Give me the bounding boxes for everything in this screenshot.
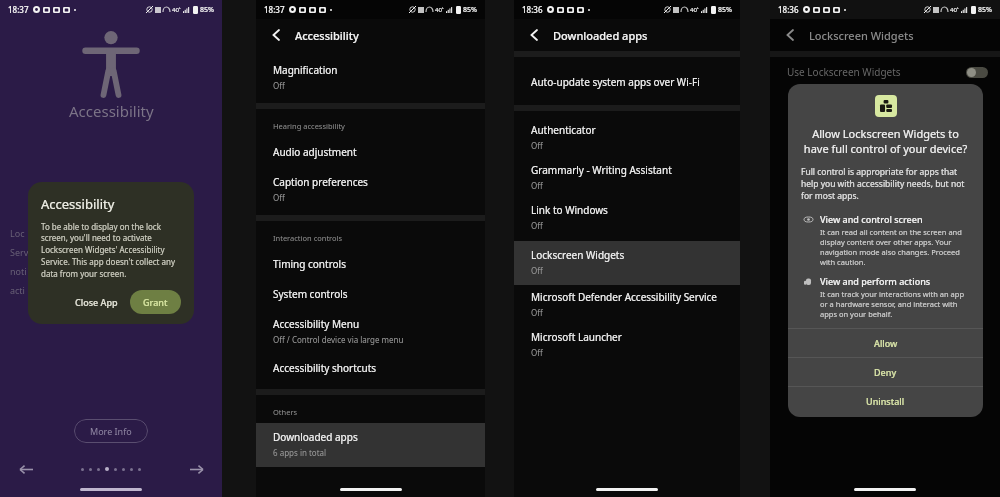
staticText: Off: [531, 140, 543, 151]
staticText: Lockscreen Widgets: [809, 28, 914, 43]
button[interactable]: Downloaded apps: [256, 423, 485, 467]
staticText: Uninstall: [866, 395, 905, 407]
staticText: 18:36: [778, 4, 799, 15]
staticText: Off: [531, 347, 543, 358]
staticText: 18:37: [8, 4, 29, 15]
button[interactable]: More Info: [74, 419, 148, 443]
staticText: Full control is appropriate for apps tha…: [801, 166, 970, 202]
button[interactable]: Microsoft Launcher: [514, 328, 740, 368]
button[interactable]: Allow: [788, 329, 983, 357]
staticText: 85%: [718, 5, 732, 15]
staticText: Accessibility: [295, 28, 359, 43]
staticText: Authenticator: [531, 123, 596, 137]
staticText: 40⁺: [435, 6, 444, 14]
staticText: It can track your interactions with an a…: [820, 289, 970, 319]
button[interactable]: Deny: [788, 358, 983, 386]
staticText: Hearing accessibility: [273, 121, 345, 131]
staticText: Audio adjustment: [273, 145, 357, 159]
staticText: View and perform actions: [820, 275, 931, 287]
staticText: Microsoft Launcher: [531, 330, 622, 344]
staticText: Accessibility: [69, 101, 154, 121]
staticText: Close App: [75, 296, 118, 308]
staticText: View and control screen: [820, 213, 923, 225]
staticText: Magnification: [273, 63, 338, 77]
staticText: Lockscreen Widgets: [531, 248, 625, 262]
button[interactable]: Use Lockscreen Widgets: [770, 57, 1000, 87]
staticText: It can read all content on the screen an…: [820, 227, 970, 267]
staticText: Use Lockscreen Widgets: [787, 65, 901, 79]
button[interactable]: System controls: [256, 285, 485, 315]
button[interactable]: Accessibility Menu: [256, 315, 485, 357]
staticText: Microsoft Defender Accessibility Service: [531, 290, 717, 304]
button[interactable]: Caption preferences: [256, 173, 485, 215]
staticText: Off: [273, 192, 285, 203]
staticText: Off: [531, 307, 543, 318]
staticText: System controls: [273, 287, 348, 301]
button[interactable]: Grammarly - Writing Assistant: [514, 161, 740, 201]
staticText: Accessibility shortcuts: [273, 361, 377, 375]
button[interactable]: Uninstall: [788, 387, 983, 415]
staticText: 18:36: [522, 4, 543, 15]
button[interactable]: Auto-update system apps over Wi-Fi: [514, 71, 740, 105]
staticText: 6 apps in total: [273, 447, 327, 458]
staticText: More Info: [90, 425, 132, 437]
button[interactable]: Timing controls: [256, 249, 485, 285]
staticText: Accessibility: [41, 195, 115, 213]
staticText: Allow Lockscreen Widgets to have full co…: [802, 126, 969, 156]
button[interactable]: Close App: [69, 291, 124, 313]
button[interactable]: Back: [524, 24, 546, 46]
staticText: acti: [10, 284, 25, 296]
staticText: 18:37: [264, 4, 285, 15]
staticText: Interaction controls: [273, 233, 343, 243]
staticText: Loc: [10, 227, 25, 239]
staticText: 40⁺: [950, 6, 959, 14]
staticText: Off: [531, 265, 543, 276]
staticText: Off: [531, 220, 543, 231]
staticText: Off: [273, 80, 285, 91]
staticText: Downloaded apps: [553, 28, 648, 43]
staticText: Grammarly - Writing Assistant: [531, 163, 672, 177]
staticText: 85%: [463, 5, 477, 15]
staticText: Grant: [143, 296, 168, 308]
staticText: Downloaded apps: [273, 430, 358, 444]
staticText: Serv: [10, 246, 29, 258]
button[interactable]: Previous: [14, 457, 38, 481]
staticText: Off / Control device via large menu: [273, 334, 404, 345]
staticText: 85%: [978, 5, 992, 15]
staticText: Link to Windows: [531, 203, 608, 217]
staticText: Others: [273, 407, 298, 417]
button[interactable]: Link to Windows: [514, 201, 740, 241]
button[interactable]: Microsoft Defender Accessibility Service: [514, 285, 740, 328]
staticText: Off: [531, 180, 543, 191]
button[interactable]: Back: [266, 24, 288, 46]
staticText: Timing controls: [273, 257, 346, 271]
button[interactable]: Authenticator: [514, 121, 740, 161]
staticText: Allow: [874, 337, 898, 349]
button[interactable]: Back: [780, 24, 802, 46]
button[interactable]: Grant: [130, 290, 181, 314]
button[interactable]: Next: [184, 457, 208, 481]
button[interactable]: Accessibility shortcuts: [256, 357, 485, 389]
button[interactable]: Audio adjustment: [256, 137, 485, 173]
staticText: Deny: [874, 366, 897, 378]
staticText: Accessibility Menu: [273, 317, 360, 331]
staticText: Auto-update system apps over Wi-Fi: [531, 75, 700, 89]
button[interactable]: Lockscreen Widgets: [514, 241, 740, 285]
staticText: 40⁺: [172, 6, 181, 14]
staticText: 40⁺: [690, 6, 699, 14]
staticText: 85%: [200, 5, 214, 15]
staticText: To be able to display on the lock screen…: [41, 221, 181, 280]
staticText: Caption preferences: [273, 175, 368, 189]
button[interactable]: Magnification: [256, 59, 485, 103]
staticText: noti: [10, 265, 27, 277]
